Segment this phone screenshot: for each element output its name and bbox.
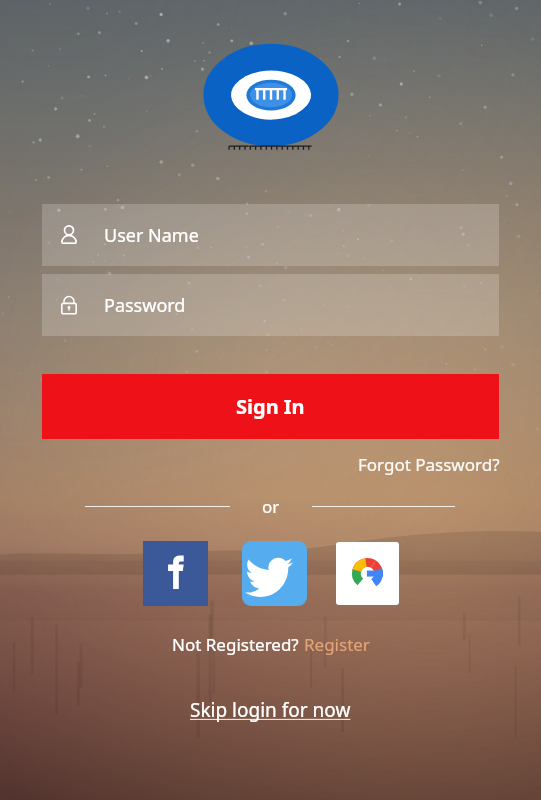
staticText: Register (304, 633, 370, 656)
button[interactable]: User Name (42, 204, 499, 266)
button[interactable]: Forgot Password? (356, 451, 502, 478)
staticText: Not Registered? (172, 633, 304, 656)
staticText: Password (104, 293, 186, 318)
button[interactable]: Register (304, 633, 370, 656)
button[interactable]: Password (42, 274, 499, 336)
staticText: or (262, 495, 280, 518)
staticText: Sign In (236, 393, 305, 420)
button[interactable]: Sign in with Twitter (242, 541, 307, 606)
staticText: Forgot Password? (358, 453, 500, 476)
button[interactable]: Sign in with Google (336, 542, 399, 605)
button[interactable]: Sign In (42, 374, 499, 439)
staticText: Skip login for now (190, 697, 351, 723)
staticText: User Name (104, 223, 199, 248)
button[interactable]: Sign in with Facebook (143, 541, 208, 606)
button[interactable]: Skip login for now (184, 695, 357, 725)
